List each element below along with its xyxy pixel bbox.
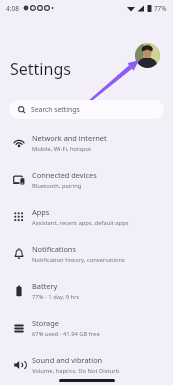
staticText: Assistant, recent apps, default apps xyxy=(32,219,129,227)
button[interactable]: Storage xyxy=(0,309,173,346)
staticText: 67% used - 41.94 GB free xyxy=(32,330,100,338)
staticText: Storage xyxy=(32,318,59,328)
button[interactable]: Sound and vibration xyxy=(0,346,173,383)
staticText: Volume, haptics, Do Not Disturb xyxy=(32,367,120,375)
staticText: Settings xyxy=(10,58,71,80)
staticText: 77% - 1 day, 9 hrs xyxy=(32,293,80,301)
staticText: Sound and vibration xyxy=(32,355,103,365)
staticText: Connected devices xyxy=(32,170,97,180)
staticText: Notifications xyxy=(32,244,76,254)
staticText: Network and internet xyxy=(32,133,107,143)
button[interactable]: Notifications xyxy=(0,235,173,272)
staticText: Search settings xyxy=(31,105,80,114)
button[interactable]: Apps xyxy=(0,198,173,235)
button[interactable] xyxy=(135,43,160,68)
staticText: Mobile, Wi-Fi, hotspot xyxy=(32,145,92,153)
staticText: Bluetooth, pairing xyxy=(32,182,82,190)
staticText: Notification history, conversations xyxy=(32,256,125,264)
staticText: Apps xyxy=(32,207,50,217)
button[interactable]: Connected devices xyxy=(0,161,173,198)
button[interactable]: Network and internet xyxy=(0,124,173,161)
button[interactable]: Battery xyxy=(0,272,173,309)
staticText: 77% xyxy=(154,4,167,13)
button[interactable]: Search settings xyxy=(9,100,164,119)
staticText: 4:08 xyxy=(6,4,19,13)
staticText: Battery xyxy=(32,281,58,291)
